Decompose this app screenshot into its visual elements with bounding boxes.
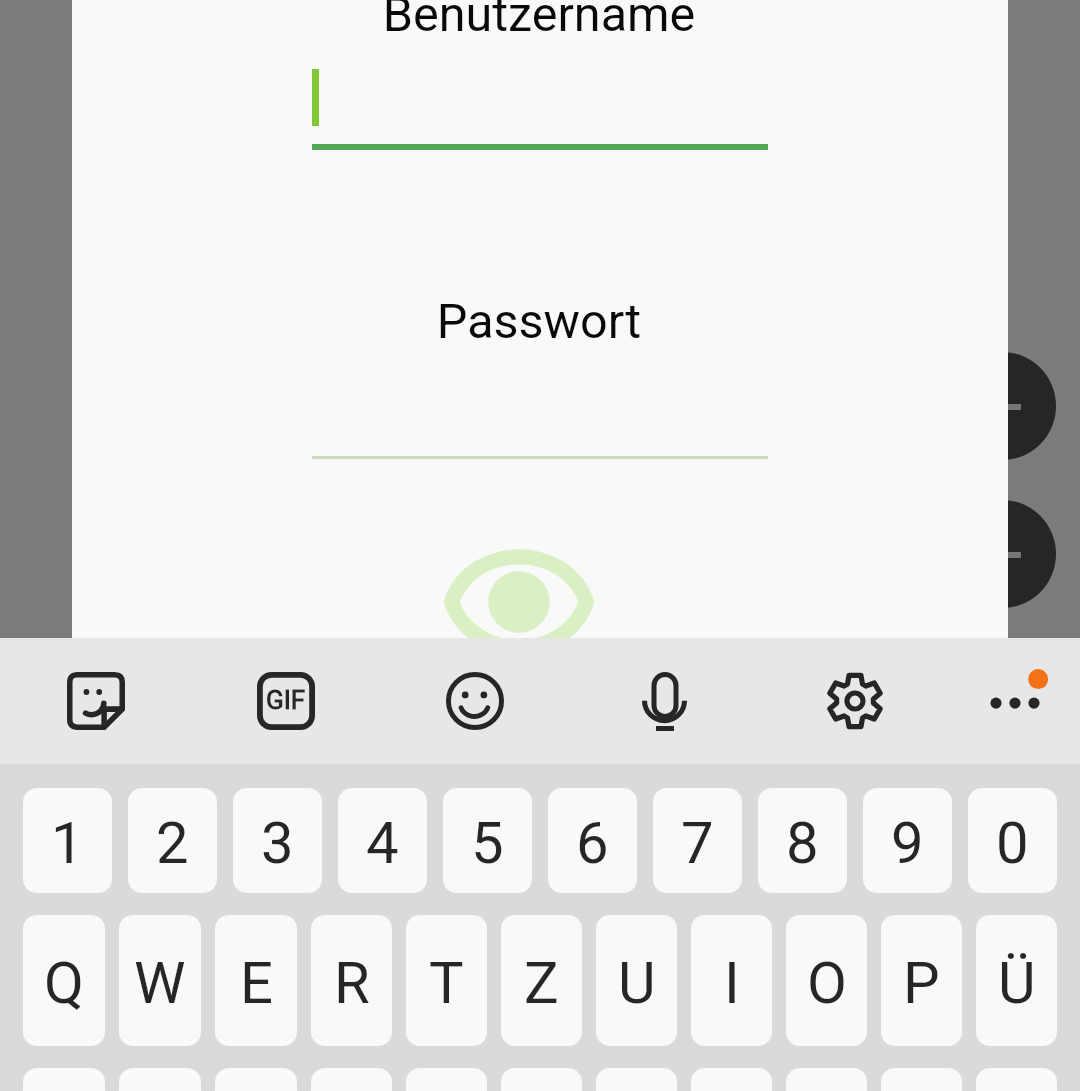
staticText: 4 [366, 809, 399, 877]
button[interactable]: R [311, 915, 392, 1046]
button[interactable]: H [501, 1068, 582, 1091]
staticText: GIF [266, 685, 306, 715]
staticText: I [724, 949, 740, 1017]
staticText: Q [44, 949, 84, 1017]
button[interactable]: Ü [976, 915, 1057, 1046]
button[interactable]: G [406, 1068, 487, 1091]
button[interactable]: 1 [23, 788, 112, 893]
staticText: 9 [891, 809, 924, 877]
button[interactable]: Settings [817, 638, 893, 764]
button[interactable]: Show password [444, 552, 594, 652]
staticText: T [429, 949, 464, 1017]
button[interactable]: I [691, 915, 772, 1046]
button[interactable]: W [119, 915, 201, 1046]
button[interactable]: S [119, 1068, 201, 1091]
button[interactable]: E [215, 915, 297, 1046]
button[interactable]: O [786, 915, 867, 1046]
button[interactable]: 0 [968, 788, 1057, 893]
staticText: O [807, 949, 847, 1017]
button[interactable]: 7 [653, 788, 742, 893]
staticText: 5 [471, 809, 504, 877]
staticText: 6 [576, 809, 609, 877]
button[interactable]: 4 [338, 788, 427, 893]
staticText: Benutzername [311, 0, 767, 43]
button[interactable]: GIF [248, 638, 324, 764]
button[interactable]: 8 [758, 788, 847, 893]
button[interactable]: Sticker [58, 638, 134, 764]
button[interactable]: 2 [128, 788, 217, 893]
staticText: U [618, 949, 656, 1017]
staticText: 3 [261, 809, 294, 877]
button[interactable]: J [596, 1068, 677, 1091]
button[interactable]: K [691, 1068, 772, 1091]
button[interactable]: A [23, 1068, 105, 1091]
button[interactable]: 9 [863, 788, 952, 893]
button[interactable]: D [215, 1068, 297, 1091]
button[interactable]: F [311, 1068, 392, 1091]
staticText: P [903, 949, 940, 1017]
staticText: 7 [681, 809, 714, 877]
button[interactable]: Ö [881, 1068, 962, 1091]
staticText: 8 [786, 809, 819, 877]
staticText: 1 [51, 809, 84, 877]
staticText: Ü [998, 949, 1036, 1017]
staticText: Passwort [311, 293, 767, 350]
button[interactable]: 6 [548, 788, 637, 893]
staticText: E [240, 949, 273, 1017]
staticText: 0 [996, 809, 1029, 877]
button[interactable]: U [596, 915, 677, 1046]
button[interactable]: Ä [976, 1068, 1057, 1091]
button[interactable]: Q [23, 915, 105, 1046]
button[interactable]: 5 [443, 788, 532, 893]
staticText: 2 [156, 809, 189, 877]
button[interactable]: Z [501, 915, 582, 1046]
button[interactable]: Emoji [437, 638, 513, 764]
button[interactable]: Benutzername [312, 0, 768, 150]
button[interactable]: L [786, 1068, 867, 1091]
button[interactable]: Passwort [312, 293, 768, 459]
staticText: Z [524, 949, 559, 1017]
button[interactable]: More options [977, 638, 1053, 764]
button[interactable]: 3 [233, 788, 322, 893]
staticText: R [334, 949, 370, 1017]
button[interactable]: P [881, 915, 962, 1046]
staticText: W [134, 949, 186, 1017]
button[interactable]: T [406, 915, 487, 1046]
button[interactable]: Voice input [627, 638, 703, 764]
